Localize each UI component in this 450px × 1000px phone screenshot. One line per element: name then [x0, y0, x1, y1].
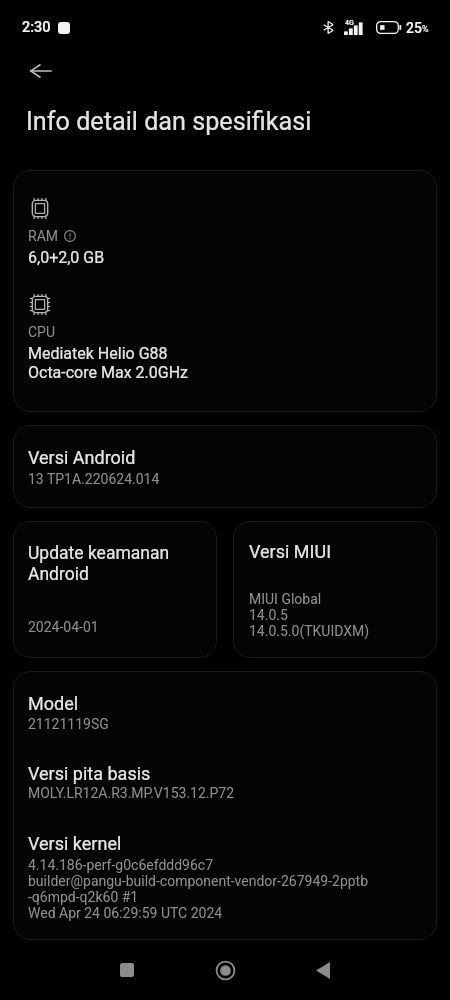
- button[interactable]: Back: [13, 44, 67, 98]
- button[interactable]: Update keamanan: [13, 521, 217, 658]
- staticText: 21121119SG: [28, 716, 109, 732]
- staticText: builder@pangu-build-component-vendor-267…: [28, 873, 369, 889]
- staticText: Model: [28, 693, 79, 714]
- staticText: 6,0+2,0 GB: [28, 248, 105, 267]
- staticText: Octa-core Max 2.0GHz: [28, 363, 188, 382]
- button[interactable]: Recents: [99, 942, 155, 998]
- button[interactable]: Versi Android: [13, 425, 437, 508]
- staticText: Versi Android: [28, 447, 136, 468]
- staticText: CPU: [28, 324, 56, 340]
- staticText: RAM: [28, 228, 58, 244]
- staticText: 13 TP1A.220624.014: [28, 471, 160, 487]
- staticText: 4G: [345, 19, 354, 27]
- button[interactable]: Back: [295, 942, 351, 998]
- staticText: 2024-04-01: [28, 619, 99, 635]
- staticText: Versi pita basis: [28, 763, 151, 784]
- staticText: 2:30: [22, 19, 51, 36]
- staticText: 4.14.186-perf-g0c6efddd96c7: [28, 857, 214, 873]
- staticText: Versi kernel: [28, 833, 122, 854]
- staticText: MOLY.LR12A.R3.MP.V153.12.P72: [28, 785, 235, 801]
- staticText: MIUI Global: [249, 591, 322, 607]
- staticText: Update keamanan: [28, 543, 170, 564]
- staticText: Wed Apr 24 06:29:59 UTC 2024: [28, 905, 223, 921]
- button[interactable]: Versi MIUI: [233, 521, 437, 658]
- staticText: 14.0.5: [249, 607, 288, 623]
- staticText: Versi MIUI: [249, 541, 332, 562]
- staticText: -q6mpd-q2k60 #1: [28, 889, 139, 905]
- staticText: 14.0.5.0(TKUIDXM): [249, 623, 370, 639]
- staticText: Mediatek Helio G88: [28, 344, 168, 363]
- staticText: Android: [28, 564, 89, 585]
- button[interactable]: RAM: [13, 170, 437, 412]
- staticText: 25: [406, 20, 422, 36]
- button[interactable]: Model: [13, 671, 437, 940]
- staticText: %: [422, 24, 429, 35]
- staticText: Info detail dan spesifikasi: [26, 107, 312, 137]
- button[interactable]: Home: [197, 942, 253, 998]
